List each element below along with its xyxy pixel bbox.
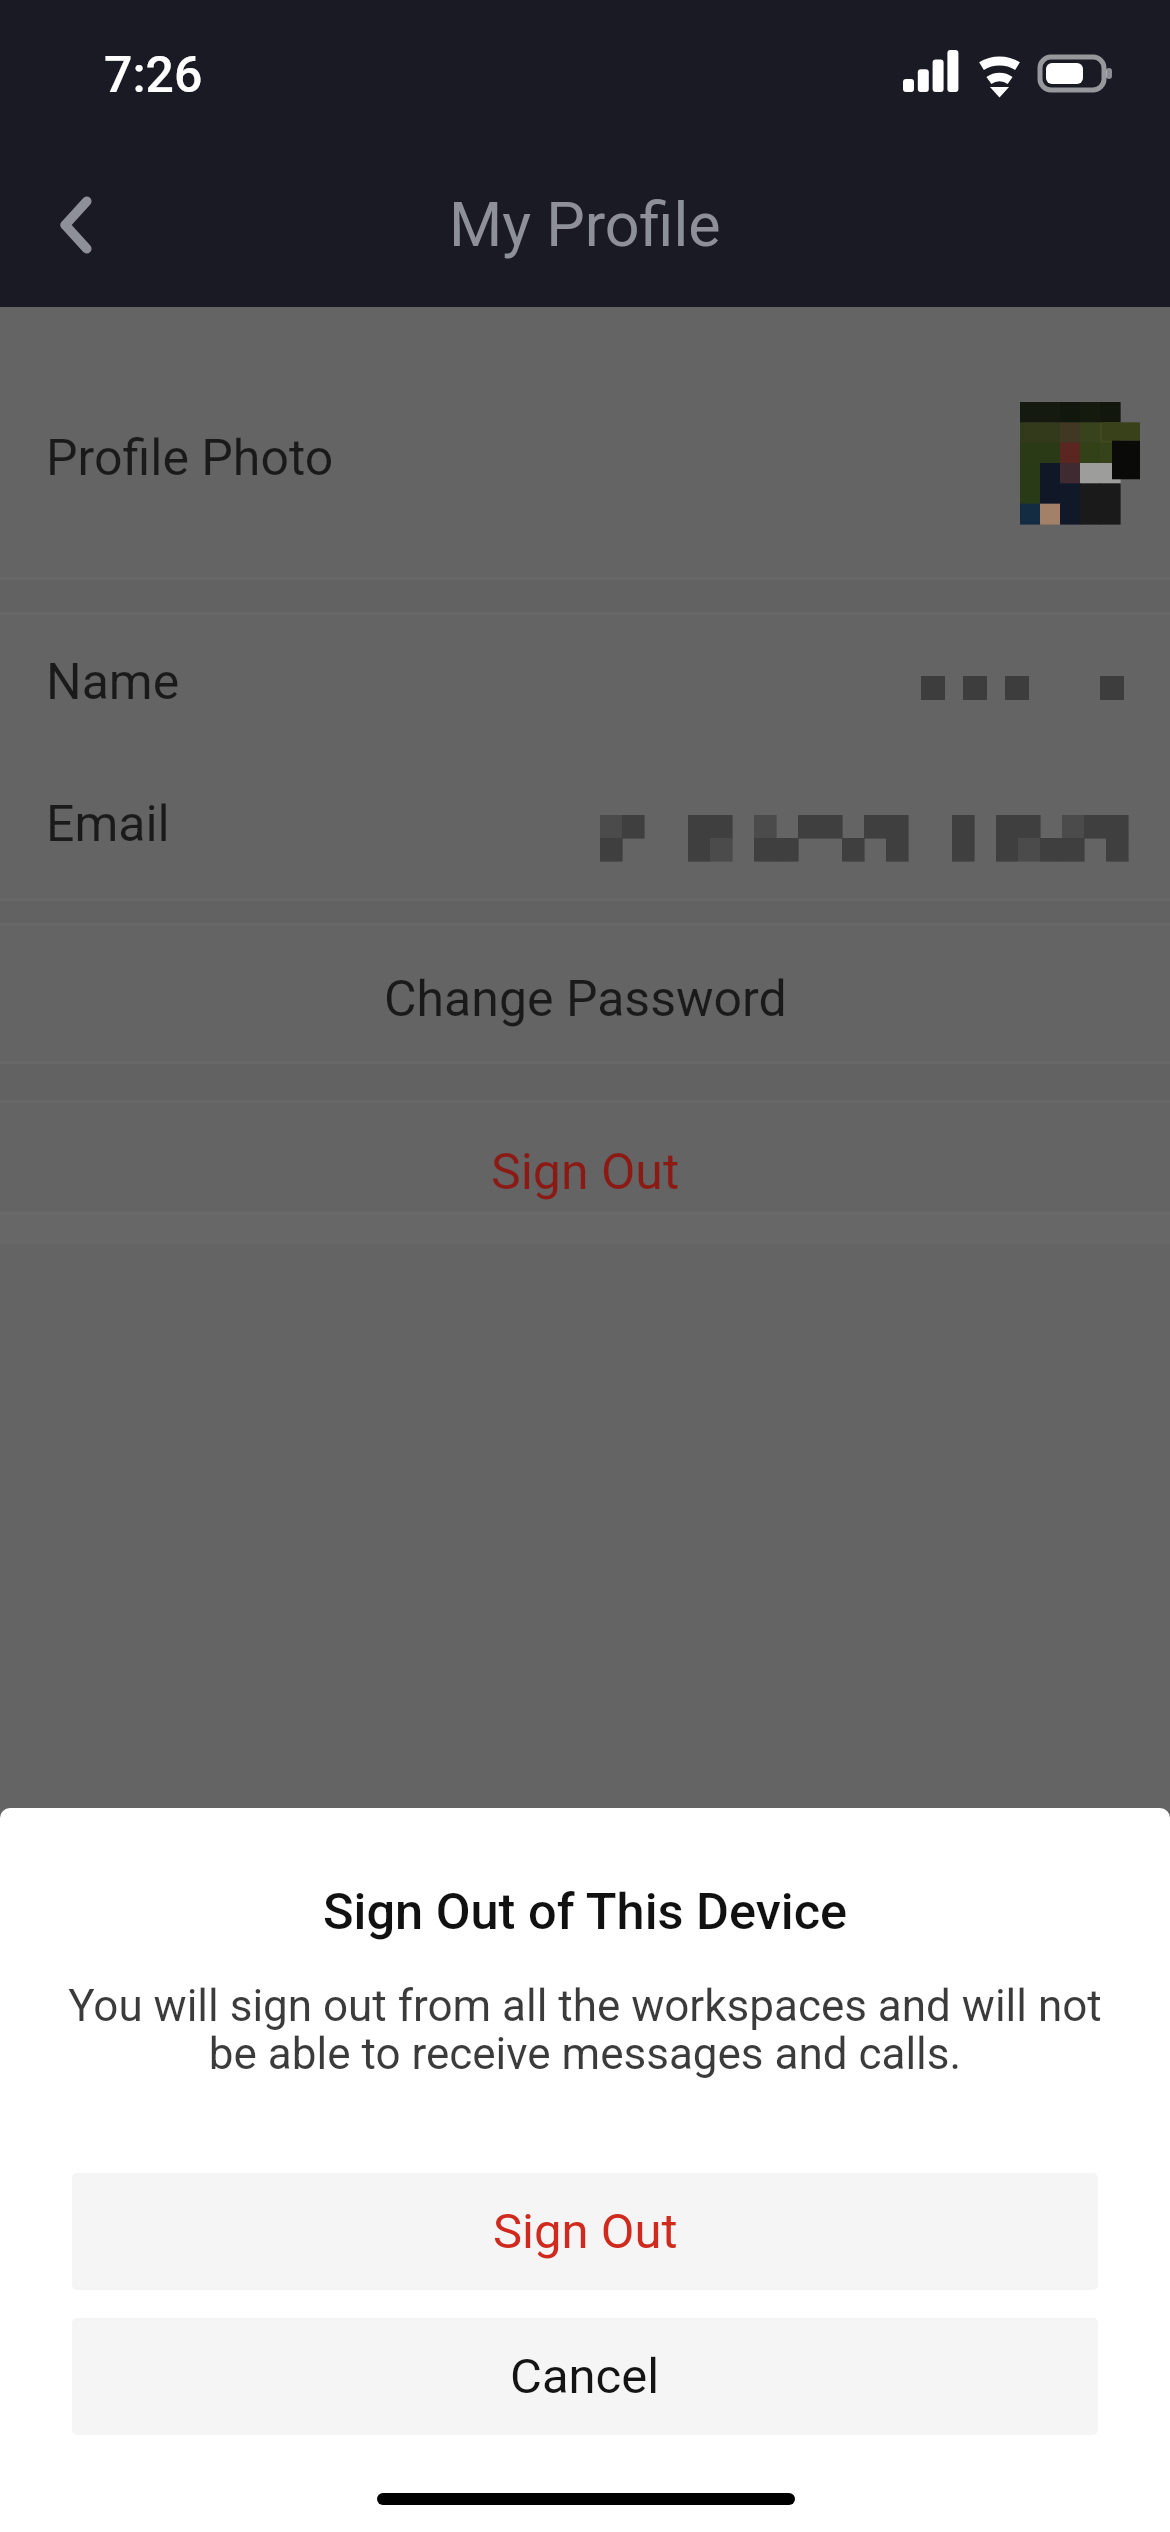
staticText: Email	[46, 795, 170, 854]
staticText: Name	[46, 653, 180, 712]
button[interactable]: Profile Photo	[0, 307, 1170, 577]
button[interactable]: Name	[0, 615, 1170, 755]
staticText: Sign Out of This Device	[323, 1882, 848, 1941]
staticText: Profile Photo	[46, 429, 334, 488]
staticText: Sign Out	[491, 1143, 680, 1202]
button[interactable]: Sign Out	[0, 1113, 1170, 1212]
button[interactable]: Sign Out	[72, 2173, 1098, 2290]
button[interactable]: Cancel	[72, 2318, 1098, 2435]
button[interactable]: Change Password	[0, 933, 1170, 1075]
button[interactable]: Email	[0, 755, 1170, 895]
staticText: Cancel	[510, 2348, 660, 2405]
staticText: Sign Out	[493, 2203, 678, 2260]
staticText: You will sign out from all the workspace…	[25, 1980, 1145, 2080]
staticText: My Profile	[449, 189, 721, 260]
staticText: Change Password	[384, 970, 787, 1029]
button[interactable]: Back	[40, 189, 112, 261]
staticText: 7:26	[104, 46, 203, 105]
